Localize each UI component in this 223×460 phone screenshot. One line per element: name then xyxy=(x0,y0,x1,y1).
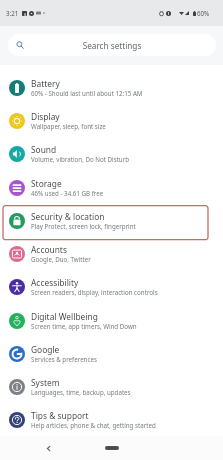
staticText: 3:21 xyxy=(6,9,19,17)
staticText: 46% used - 34.61 GB free xyxy=(31,189,104,197)
staticText: Accessibility xyxy=(31,277,79,288)
staticText: Google xyxy=(31,344,60,355)
button[interactable]: Tips & support xyxy=(0,403,223,436)
button[interactable]: Home xyxy=(105,446,119,450)
staticText: Volume, vibration, Do Not Disturb xyxy=(31,155,130,163)
button[interactable]: Back xyxy=(38,438,58,458)
staticText: System xyxy=(31,377,60,388)
button[interactable]: Accessibility xyxy=(0,270,223,303)
staticText: Tips & support xyxy=(31,410,89,421)
staticText: Security & location xyxy=(31,211,105,222)
staticText: Google, Duo, Twitter xyxy=(31,255,91,263)
staticText: Storage xyxy=(31,178,62,189)
staticText: Accounts xyxy=(31,244,67,255)
staticText: Play Protect, screen lock, fingerprint xyxy=(31,222,136,230)
button[interactable]: Storage xyxy=(0,171,223,204)
staticText: Battery xyxy=(31,78,60,89)
button[interactable]: System xyxy=(0,370,223,403)
button[interactable]: Security & location xyxy=(0,204,223,237)
staticText: Search settings xyxy=(8,40,216,51)
button[interactable]: Search settings xyxy=(8,34,216,56)
button[interactable]: Battery xyxy=(0,71,223,104)
staticText: Help articles, phone & chat, getting sta… xyxy=(31,421,156,429)
staticText: Screen time, app timers, Wind Down xyxy=(31,322,137,330)
button[interactable]: Google xyxy=(0,337,223,370)
staticText: Digital Wellbeing xyxy=(31,311,98,322)
button[interactable]: Digital Wellbeing xyxy=(0,304,223,337)
staticText: Languages, time, backup, updates xyxy=(31,388,131,396)
staticText: Services & preferences xyxy=(31,355,97,363)
staticText: Display xyxy=(31,111,60,122)
staticText: Wallpaper, sleep, font size xyxy=(31,122,106,130)
button[interactable]: Sound xyxy=(0,137,223,170)
staticText: Screen readers, display, interaction con… xyxy=(31,288,158,296)
button[interactable]: Accounts xyxy=(0,237,223,270)
staticText: 60% - Should last until about 12:15 AM xyxy=(31,89,143,97)
staticText: 60% xyxy=(197,9,210,17)
button[interactable]: Display xyxy=(0,104,223,137)
staticText: Sound xyxy=(31,144,57,155)
